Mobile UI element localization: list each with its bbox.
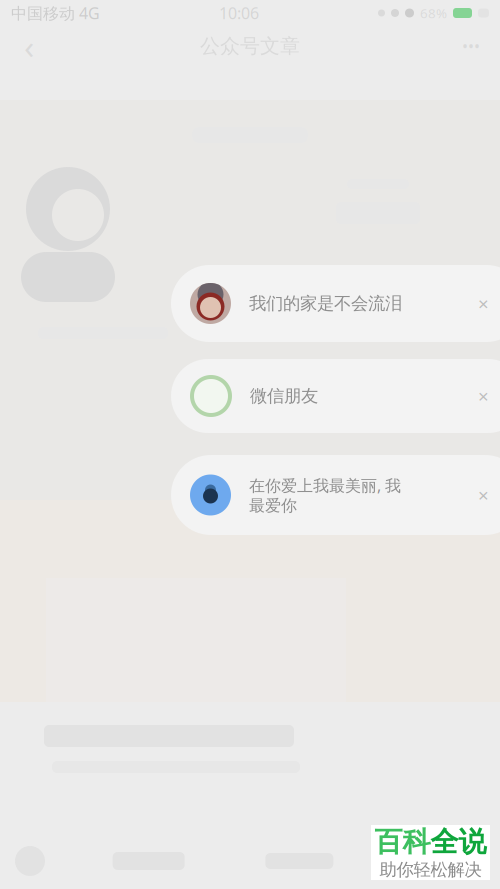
staticText: ‹ [24,24,34,68]
button[interactable]: 我们的家是不会流泪 [171,265,500,342]
button[interactable]: Author [2,839,58,883]
staticText: 公众号文章 [200,34,300,58]
staticText: 微信朋友 [250,385,318,407]
staticText: 百科 [374,825,430,859]
staticText: 中国移动 4G [11,2,100,24]
button[interactable]: 微信朋友 [171,359,500,433]
button[interactable]: Comments [89,839,209,883]
button[interactable]: Share [239,839,359,883]
staticText: × [478,384,489,408]
staticText: 全说 [430,825,486,859]
staticText: 68% [420,4,447,22]
staticText: 助你轻松解决 [379,859,481,880]
staticText: 我们的家是不会流泪 [249,293,402,314]
button[interactable]: 在你爱上我最美丽, 我 最爱你 [171,455,500,535]
staticText: 10:06 [219,2,259,24]
staticText: × [478,291,489,316]
staticText: × [478,483,489,507]
staticText: 在你爱上我最美丽, 我 最爱你 [249,474,401,515]
staticText: ••• [462,35,480,57]
